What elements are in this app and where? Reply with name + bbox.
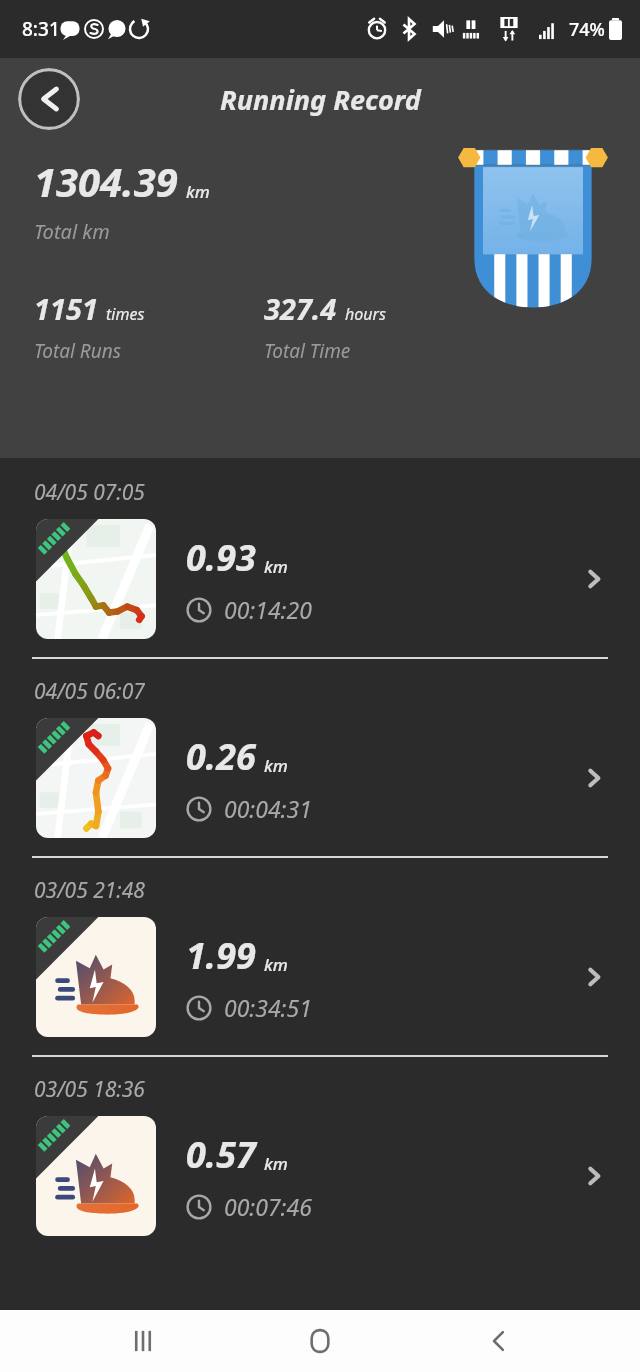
staticText: km — [186, 180, 210, 203]
staticText: 00:14:20 — [224, 594, 312, 625]
staticText: Running Record — [220, 81, 421, 118]
staticText: 327.4 — [264, 289, 337, 328]
staticText: 00:07:46 — [224, 1191, 312, 1222]
staticText: 0.93 — [186, 533, 256, 582]
button[interactable]: 04/05 07:05 — [0, 458, 640, 657]
staticText: 03/05 18:36 — [34, 1075, 145, 1104]
button[interactable]: 03/05 18:36 — [0, 1057, 640, 1254]
staticText: 04/05 06:07 — [34, 677, 145, 706]
button[interactable]: Back — [18, 68, 80, 130]
staticText: 00:34:51 — [224, 992, 312, 1023]
button[interactable]: Recent apps — [108, 1310, 178, 1372]
staticText: 0.57 — [186, 1130, 256, 1179]
button[interactable]: Home — [285, 1310, 355, 1372]
staticText: 0.26 — [186, 732, 256, 781]
staticText: 8:31 — [22, 16, 60, 42]
staticText: Total Runs — [34, 338, 121, 364]
staticText: 74% — [569, 17, 605, 42]
staticText: Total Time — [264, 338, 351, 364]
staticText: km — [264, 953, 288, 976]
staticText: hours — [345, 303, 386, 325]
button[interactable]: Back — [463, 1310, 533, 1372]
staticText: 1304.39 — [34, 154, 178, 208]
staticText: times — [106, 303, 145, 325]
button[interactable]: 03/05 21:48 — [0, 858, 640, 1055]
staticText: 00:04:31 — [224, 793, 312, 824]
staticText: Total km — [34, 218, 110, 245]
staticText: 03/05 21:48 — [34, 876, 145, 905]
staticText: 04/05 07:05 — [34, 478, 145, 507]
staticText: km — [264, 754, 288, 777]
button[interactable]: 04/05 06:07 — [0, 659, 640, 856]
staticText: 1151 — [34, 289, 98, 328]
staticText: km — [264, 1152, 288, 1175]
staticText: km — [264, 555, 288, 578]
staticText: 1.99 — [186, 931, 256, 980]
